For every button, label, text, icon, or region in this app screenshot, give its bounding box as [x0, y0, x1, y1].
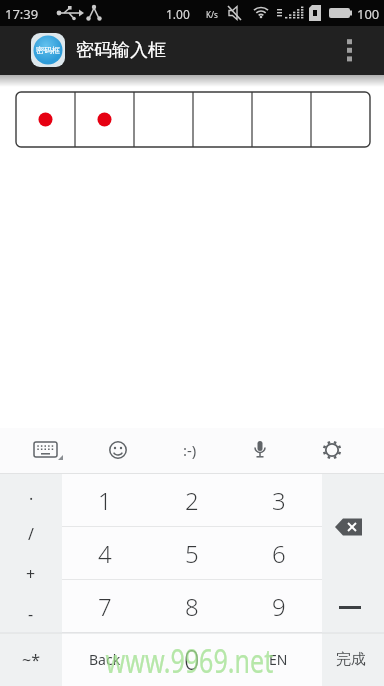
button[interactable]: 3 — [235, 474, 322, 526]
button[interactable]: 完成 — [322, 633, 384, 686]
staticText: - — [28, 603, 34, 625]
staticText: . — [29, 483, 34, 505]
staticText: 8 — [185, 590, 199, 623]
staticText: Back — [89, 650, 121, 669]
button[interactable]: 5 — [148, 527, 235, 579]
staticText: :-) — [183, 440, 197, 460]
staticText: 完成 — [336, 650, 366, 669]
button[interactable]: + — [0, 554, 62, 594]
button[interactable]: 8 — [148, 580, 235, 632]
button[interactable] — [28, 430, 68, 470]
staticText: + — [26, 563, 36, 585]
staticText: 1.00 — [166, 6, 190, 22]
button[interactable]: 1 — [62, 474, 148, 526]
button[interactable]: 9 — [235, 580, 322, 632]
button[interactable] — [98, 430, 138, 470]
button[interactable] — [16, 92, 370, 147]
button[interactable]: EN — [235, 633, 322, 685]
button[interactable]: 2 — [148, 474, 235, 526]
button[interactable] — [312, 430, 352, 470]
button[interactable] — [333, 35, 365, 67]
staticText: 9 — [272, 590, 286, 623]
button[interactable]: 0 — [148, 633, 235, 685]
staticText: 6 — [272, 537, 286, 570]
staticText: ~* — [22, 649, 40, 671]
staticText: 7 — [98, 590, 112, 623]
button[interactable]: 7 — [62, 580, 148, 632]
staticText: 5 — [185, 537, 199, 570]
button[interactable]: - — [0, 594, 62, 634]
button[interactable] — [322, 474, 384, 580]
staticText: EN — [269, 650, 288, 669]
button[interactable]: Back — [62, 633, 148, 685]
staticText: 0 — [184, 641, 200, 678]
staticText: 3 — [272, 484, 286, 517]
button[interactable]: :-) — [170, 430, 210, 470]
staticText: 17:39 — [5, 5, 39, 23]
staticText: www.9969.net — [105, 638, 273, 683]
staticText: 4 — [98, 537, 112, 570]
button[interactable] — [322, 580, 384, 633]
staticText: 1 — [98, 484, 112, 517]
button[interactable] — [240, 430, 280, 470]
button[interactable]: 6 — [235, 527, 322, 579]
staticText: 密码输入框 — [76, 39, 166, 62]
staticText: 100 — [357, 5, 380, 23]
staticText: 2 — [185, 484, 199, 517]
button[interactable]: . — [0, 474, 62, 514]
staticText: / — [28, 523, 34, 545]
button[interactable]: 4 — [62, 527, 148, 579]
staticText: 密码框 — [36, 45, 60, 55]
staticText: K/s — [206, 9, 218, 20]
button[interactable]: ~* — [0, 634, 62, 686]
button[interactable]: / — [0, 514, 62, 554]
